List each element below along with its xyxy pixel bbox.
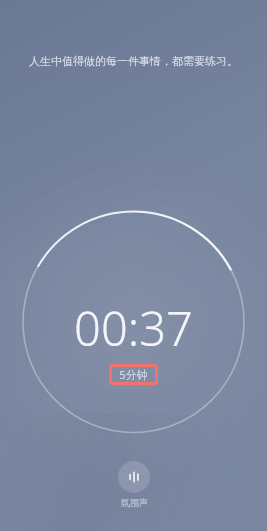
button[interactable]: 5分钟 — [109, 364, 158, 385]
staticText: 氛围声 — [121, 497, 148, 508]
button[interactable]: 氛围声 — [118, 461, 150, 493]
staticText: 人生中值得做的每一件事情，都需要练习。 — [29, 54, 238, 68]
staticText: 5分钟 — [119, 367, 148, 382]
staticText: 00:37 — [74, 296, 193, 360]
